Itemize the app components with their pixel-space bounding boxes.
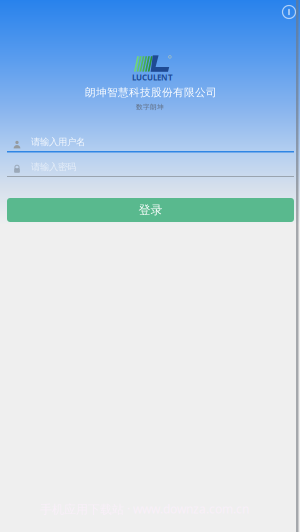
staticText: LUCULENT bbox=[132, 72, 173, 83]
staticText: 请输入用户名 bbox=[31, 136, 85, 148]
staticText: 请输入密码 bbox=[31, 161, 76, 173]
staticText: 数字朗坤 bbox=[136, 103, 164, 111]
staticText: 朗坤智慧科技股份有限公司 bbox=[85, 86, 217, 99]
staticText: 登录 bbox=[138, 203, 162, 217]
button[interactable]: 登录 bbox=[7, 198, 294, 222]
button[interactable]: Info bbox=[276, 0, 300, 24]
